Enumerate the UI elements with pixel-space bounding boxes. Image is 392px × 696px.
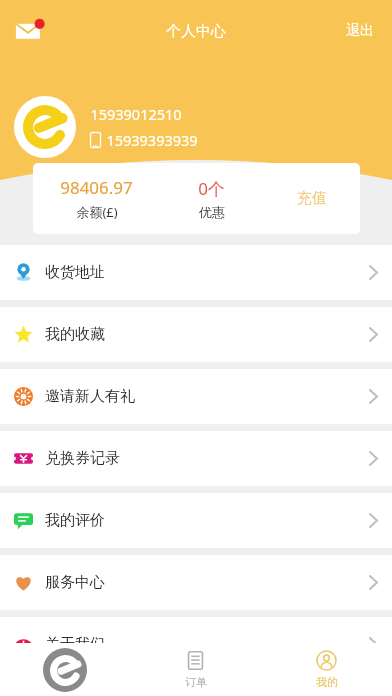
staticText: 邀请新人有礼 xyxy=(45,387,135,406)
button[interactable]: 我的收藏 xyxy=(0,307,392,362)
button[interactable]: 服务中心 xyxy=(0,555,392,610)
staticText: 我的评价 xyxy=(45,511,105,530)
staticText: 余额(£) xyxy=(76,203,118,221)
staticText: 收货地址 xyxy=(45,263,105,282)
staticText: 15939393939 xyxy=(106,130,198,150)
button[interactable]: 0个 xyxy=(160,177,263,220)
button[interactable]: Home xyxy=(0,643,130,696)
staticText: 15939012510 xyxy=(90,104,182,124)
staticText: 兑换券记录 xyxy=(45,449,120,468)
button[interactable]: 退出 xyxy=(342,18,378,44)
button[interactable]: 订单 xyxy=(130,643,261,696)
button[interactable]: 我的评价 xyxy=(0,493,392,548)
button[interactable]: 关于我们 xyxy=(0,617,392,672)
staticText: 退出 xyxy=(346,22,374,40)
staticText: 个人中心 xyxy=(166,22,226,41)
button[interactable]: 邀请新人有礼 xyxy=(0,369,392,424)
staticText: 我的收藏 xyxy=(45,325,105,344)
button[interactable]: 收货地址 xyxy=(0,245,392,300)
staticText: 优惠 xyxy=(199,204,225,220)
button[interactable]: 我的 xyxy=(261,643,392,696)
staticText: 订单 xyxy=(185,675,207,689)
staticText: 我的 xyxy=(316,675,338,689)
staticText: 0个 xyxy=(198,177,225,200)
staticText: 服务中心 xyxy=(45,573,105,592)
staticText: 关于我们 xyxy=(45,635,105,654)
button[interactable]: 充值 xyxy=(263,189,360,208)
button[interactable]: 兑换券记录 xyxy=(0,431,392,486)
button[interactable]: Messages xyxy=(8,9,52,53)
staticText: 充值 xyxy=(297,189,327,208)
button[interactable]: 98406.97 xyxy=(33,176,160,221)
staticText: 98406.97 xyxy=(60,176,133,199)
